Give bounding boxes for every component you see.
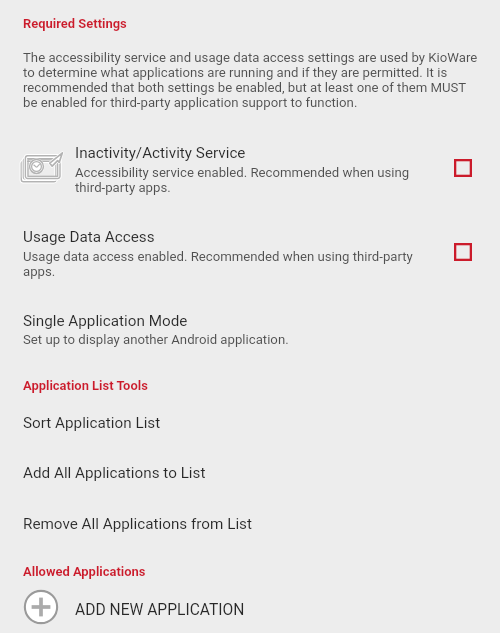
- button[interactable]: Usage Data Access: [0, 224, 500, 282]
- button[interactable]: Inactivity/Activity Service checkbox: [444, 149, 482, 187]
- staticText: Accessibility service enabled. Recommend…: [75, 165, 420, 195]
- staticText: Allowed Applications: [23, 564, 146, 579]
- staticText: Usage Data Access: [23, 228, 155, 246]
- button[interactable]: Inactivity/Activity Service: [0, 140, 500, 198]
- staticText: ADD NEW APPLICATION: [75, 601, 245, 619]
- staticText: Set up to display another Android applic…: [23, 332, 289, 347]
- staticText: Required Settings: [23, 16, 127, 31]
- staticText: Sort Application List: [23, 414, 161, 432]
- button[interactable]: Sort Application List: [0, 412, 500, 438]
- staticText: Application List Tools: [23, 378, 148, 393]
- staticText: The accessibility service and usage data…: [23, 50, 479, 110]
- button[interactable]: ADD NEW APPLICATION: [0, 586, 500, 632]
- button[interactable]: Usage Data Access checkbox: [444, 233, 482, 271]
- button[interactable]: Single Application Mode: [0, 308, 500, 350]
- staticText: Remove All Applications from List: [23, 515, 252, 533]
- staticText: Inactivity/Activity Service: [75, 144, 246, 162]
- staticText: Add All Applications to List: [23, 464, 206, 482]
- staticText: Single Application Mode: [23, 312, 188, 330]
- staticText: Usage data access enabled. Recommended w…: [23, 249, 423, 279]
- button[interactable]: Remove All Applications from List: [0, 513, 500, 539]
- button[interactable]: Add All Applications to List: [0, 462, 500, 488]
